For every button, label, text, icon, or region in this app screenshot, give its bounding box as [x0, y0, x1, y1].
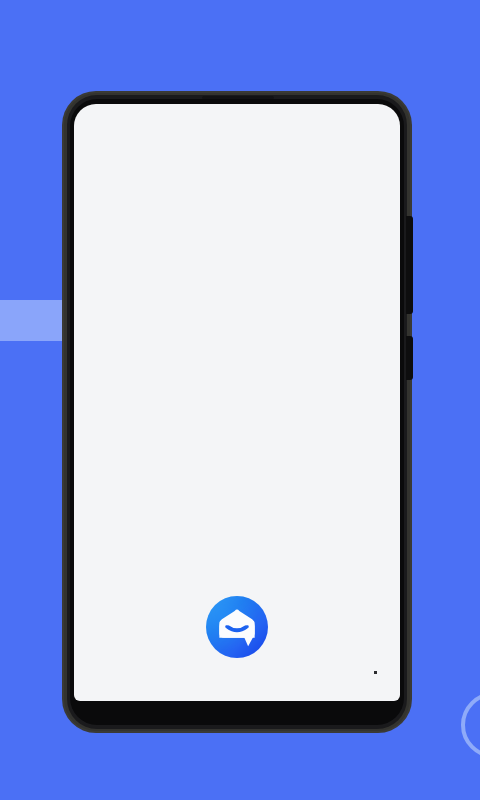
- button[interactable]: Chat app icon: [206, 596, 268, 658]
- button[interactable]: Volume button: [406, 216, 413, 314]
- button[interactable]: Power button: [406, 336, 413, 380]
